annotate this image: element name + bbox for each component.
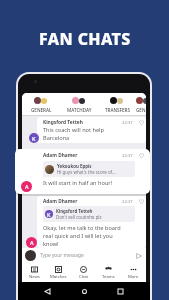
button[interactable]: Adam Dhamer bbox=[15, 149, 150, 194]
staticText: Type your message bbox=[40, 252, 84, 259]
button[interactable]: Adam Dhamer bbox=[37, 196, 146, 248]
staticText: Kingsford Tetteh bbox=[56, 208, 93, 214]
button[interactable]: TRANSFERS bbox=[98, 93, 136, 115]
staticText: FAN CHATS bbox=[39, 28, 131, 50]
button[interactable]: Back bbox=[41, 285, 54, 298]
button[interactable]: Home bbox=[78, 285, 91, 298]
staticText: 22:37 bbox=[122, 120, 133, 126]
staticText: MATCHDAY bbox=[67, 107, 92, 113]
button[interactable]: Chat bbox=[71, 263, 96, 282]
staticText: 22:37 bbox=[122, 199, 133, 205]
staticText: Teams bbox=[102, 274, 115, 280]
staticText: Adam Dhamer bbox=[43, 152, 78, 159]
staticText: News bbox=[29, 274, 40, 280]
staticText: Kingsford Tetteh bbox=[43, 119, 83, 126]
other: Send bbox=[136, 253, 142, 259]
staticText: GENERAL bbox=[31, 107, 52, 113]
staticText: 22:37 bbox=[122, 153, 133, 159]
staticText: Chat bbox=[79, 274, 89, 280]
button[interactable]: Kingsford Tetteh bbox=[37, 117, 146, 143]
staticText: Hi guys what's the score of... bbox=[57, 169, 116, 175]
button[interactable]: Recent apps bbox=[114, 285, 127, 298]
button[interactable]: GENERAL bbox=[136, 93, 146, 115]
button[interactable]: Teams bbox=[96, 263, 121, 282]
button[interactable]: More bbox=[121, 263, 146, 282]
button[interactable]: Matches bbox=[46, 263, 71, 282]
button[interactable]: GENERAL bbox=[22, 93, 60, 115]
staticText: More bbox=[128, 274, 139, 280]
button[interactable]: News bbox=[22, 263, 46, 282]
staticText: It will start in half an hour! bbox=[43, 179, 113, 187]
staticText: Okay, let me talk to the board real quic… bbox=[43, 224, 121, 248]
staticText: K bbox=[32, 135, 36, 142]
staticText: TRANSFERS bbox=[105, 107, 130, 113]
staticText: Matches bbox=[50, 274, 67, 280]
staticText: K bbox=[47, 211, 51, 218]
staticText: GENERAL bbox=[136, 107, 146, 113]
staticText: Don't sell coutinho plz bbox=[56, 214, 102, 220]
staticText: Adam Dhamer bbox=[43, 198, 78, 205]
button[interactable]: MATCHDAY bbox=[60, 93, 98, 115]
staticText: A bbox=[25, 183, 29, 190]
staticText: A bbox=[30, 239, 34, 246]
staticText: Yekoukou Eppis bbox=[57, 163, 92, 169]
staticText: This coach will not help Barcelona bbox=[43, 126, 104, 142]
